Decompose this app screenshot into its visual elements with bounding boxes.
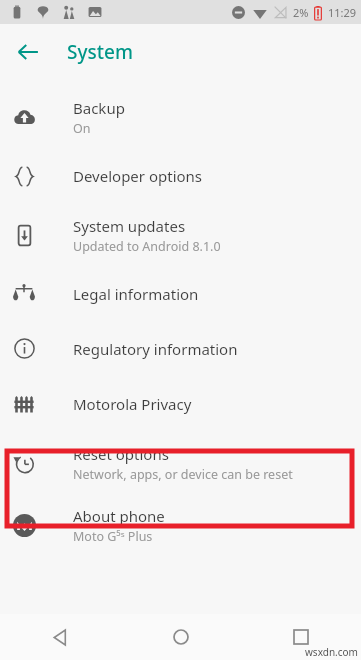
staticText: Regulatory information [73, 339, 238, 359]
staticText: System updates [73, 216, 186, 236]
staticText: wsxdn.com [305, 645, 358, 659]
button[interactable]: Recent apps [241, 614, 361, 660]
staticText: About phone [73, 506, 165, 526]
button[interactable]: Motorola Privacy [0, 376, 361, 432]
button[interactable]: About phone [0, 494, 361, 556]
button[interactable]: Reset options [0, 432, 361, 494]
staticText: On [73, 120, 91, 137]
staticText: 2% [293, 5, 309, 20]
button[interactable]: System updates [0, 204, 361, 266]
button[interactable]: Back [8, 32, 48, 72]
button[interactable]: Back [0, 614, 121, 660]
button[interactable]: Regulatory information [0, 321, 361, 376]
button[interactable]: Home [121, 614, 241, 660]
button[interactable]: Legal information [0, 266, 361, 321]
staticText: Updated to Android 8.1.0 [73, 238, 221, 255]
button[interactable]: Backup [0, 86, 361, 148]
staticText: Network, apps, or device can be reset [73, 466, 293, 483]
staticText: 11:29 [328, 5, 357, 20]
staticText: Developer options [73, 166, 203, 186]
staticText: Legal information [73, 284, 199, 304]
staticText: System [67, 39, 133, 65]
button[interactable]: Developer options [0, 148, 361, 204]
staticText: Backup [73, 98, 125, 118]
staticText: Moto G⁵ˢ Plus [73, 528, 153, 545]
staticText: Motorola Privacy [73, 394, 192, 414]
staticText: Reset options [73, 444, 169, 464]
